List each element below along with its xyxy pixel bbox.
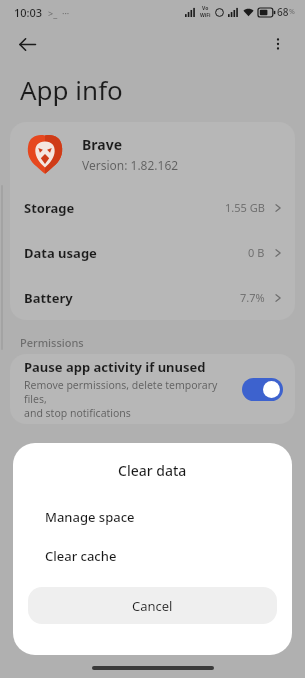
staticText: 7.7% (240, 290, 265, 305)
staticText: Brave (82, 135, 123, 154)
staticText: Pause app activity if unused (24, 358, 206, 376)
staticText: Remove permissions, delete temporary fil… (24, 378, 234, 406)
staticText: Storage (24, 199, 75, 217)
staticText: Permissions (20, 335, 84, 350)
button[interactable]: Data usage (10, 230, 295, 275)
staticText: Clear data (118, 461, 187, 480)
button[interactable]: More options (261, 27, 295, 61)
staticText: Manage space (45, 508, 135, 526)
staticText: % (289, 7, 295, 17)
staticText: Battery (24, 289, 73, 307)
button[interactable]: Cancel (28, 587, 277, 624)
staticText: Data usage (24, 244, 97, 262)
staticText: App info (20, 72, 123, 107)
staticText: Version: 1.82.162 (82, 157, 179, 173)
button[interactable]: Pause app activity if unused (242, 378, 283, 401)
button[interactable]: Manage space (13, 497, 292, 536)
staticText: >_ (48, 7, 58, 19)
button[interactable]: Storage (10, 185, 295, 230)
staticText: ··· (62, 7, 70, 19)
button[interactable]: Battery (10, 275, 295, 320)
staticText: Cancel (132, 597, 173, 615)
button[interactable]: Brave (10, 122, 295, 185)
staticText: Vo (202, 5, 209, 12)
staticText: 10:03 (14, 5, 43, 20)
staticText: and stop notifications (24, 406, 131, 420)
staticText: 0 B (248, 245, 265, 260)
staticText: Clear cache (45, 547, 117, 565)
button[interactable]: Pause app activity if unused (10, 354, 295, 424)
staticText: 1.55 GB (225, 200, 265, 215)
staticText: WiFi (200, 12, 211, 19)
button[interactable]: Back (10, 27, 44, 61)
staticText: 68 (277, 5, 289, 19)
button[interactable]: Clear cache (13, 536, 292, 575)
